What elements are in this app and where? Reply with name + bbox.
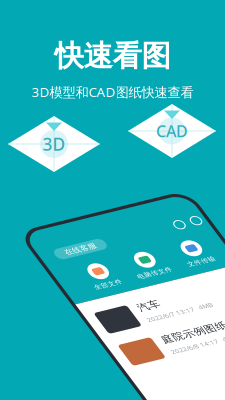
- button[interactable]: 汽车: [30, 333, 180, 367]
- staticText: 庭院示例图纸: [72, 377, 138, 391]
- staticText: 全部文件: [48, 307, 76, 315]
- button[interactable]: 文件传输: [137, 285, 179, 315]
- staticText: 在线客服: [45, 262, 77, 271]
- staticText: 4MB: [125, 395, 139, 400]
- button[interactable]: 全部文件: [41, 285, 83, 315]
- staticText: 快速看图: [54, 38, 170, 74]
- staticText: 3D模型和CAD图纸快速查看: [31, 83, 193, 101]
- staticText: 3D: [42, 132, 65, 155]
- button[interactable]: 在线客服: [35, 260, 87, 273]
- staticText: 2022/6/7 13:17: [72, 355, 120, 363]
- staticText: 4MB: [125, 355, 139, 363]
- button[interactable]: Search: [158, 261, 168, 271]
- button[interactable]: 电脑传文件: [89, 285, 131, 315]
- button[interactable]: 庭院示例图纸: [30, 373, 180, 400]
- staticText: 电脑传文件: [92, 307, 127, 315]
- staticText: CAD: [156, 120, 188, 142]
- staticText: 文件传输: [144, 307, 172, 315]
